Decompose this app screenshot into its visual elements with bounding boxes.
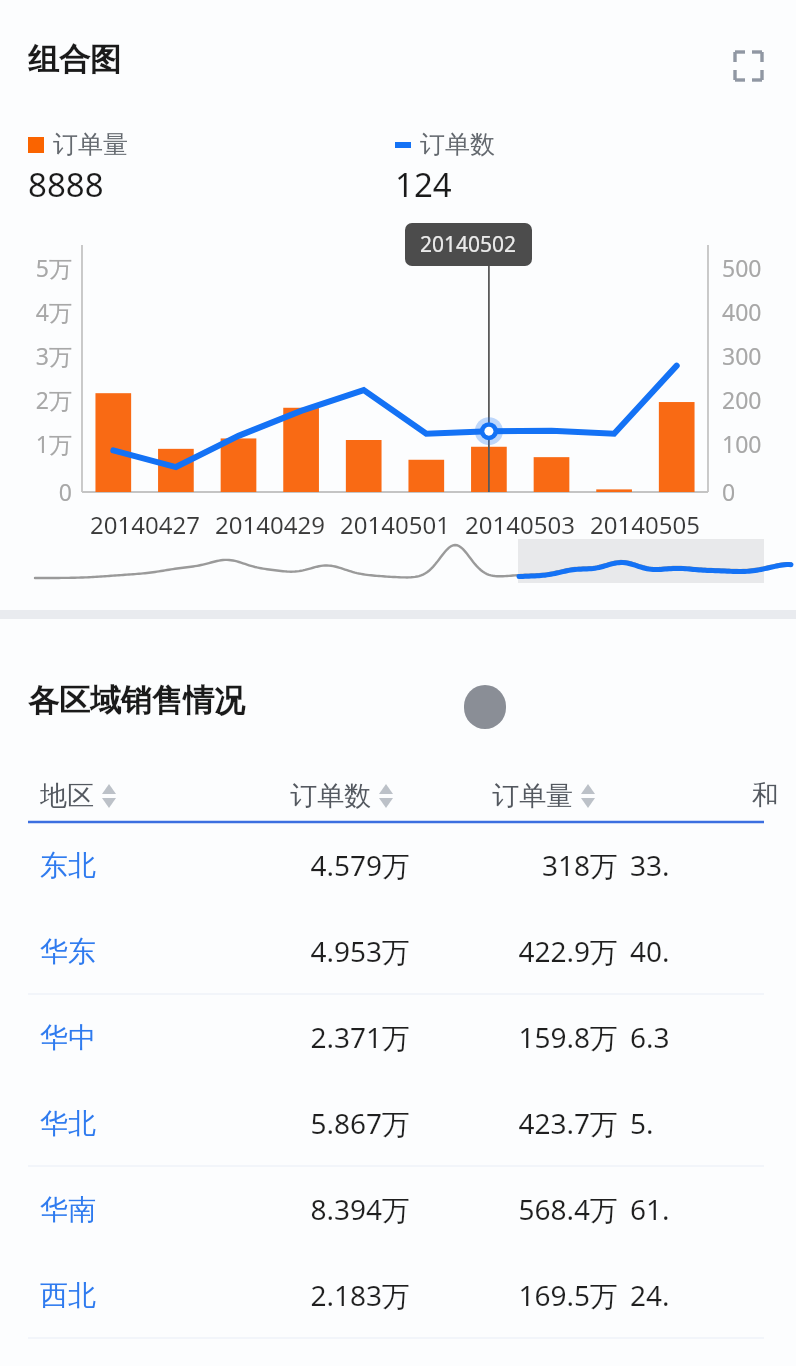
staticText: 20140429 bbox=[195, 508, 345, 541]
staticText: 4.579万 bbox=[120, 846, 410, 884]
staticText: 华北 bbox=[40, 1106, 96, 1141]
staticText: 169.5万 bbox=[410, 1276, 618, 1314]
button[interactable]: 华北 bbox=[0, 1080, 796, 1166]
staticText: 3万 bbox=[14, 340, 72, 371]
staticText: 61. bbox=[630, 1190, 670, 1228]
staticText: 8.394万 bbox=[120, 1190, 410, 1228]
staticText: 20140501 bbox=[320, 508, 470, 541]
staticText: 20140503 bbox=[445, 508, 595, 541]
staticText: 2.183万 bbox=[120, 1276, 410, 1314]
staticText: 500 bbox=[722, 252, 762, 283]
staticText: 200 bbox=[722, 384, 762, 415]
staticText: 0 bbox=[722, 476, 736, 507]
staticText: 400 bbox=[722, 296, 762, 327]
staticText: 8888 bbox=[28, 162, 104, 207]
staticText: 地区 bbox=[40, 779, 94, 813]
staticText: 568.4万 bbox=[410, 1190, 618, 1228]
button[interactable]: 华南 bbox=[0, 1166, 796, 1252]
staticText: 124 bbox=[395, 162, 452, 207]
staticText: 各区域销售情况 bbox=[28, 681, 245, 720]
staticText: 5.867万 bbox=[120, 1104, 410, 1142]
staticText: 订单数 bbox=[290, 779, 371, 813]
staticText: 159.8万 bbox=[410, 1018, 618, 1056]
staticText: 0 bbox=[14, 476, 72, 507]
staticText: 西北 bbox=[40, 1278, 96, 1313]
button[interactable]: Fullscreen bbox=[724, 41, 772, 89]
staticText: 423.7万 bbox=[410, 1104, 618, 1142]
staticText: 300 bbox=[722, 340, 762, 371]
button[interactable]: More options bbox=[464, 685, 506, 729]
staticText: 318万 bbox=[410, 846, 618, 884]
staticText: 2.371万 bbox=[120, 1018, 410, 1056]
button[interactable]: 订单数 bbox=[290, 774, 394, 818]
staticText: 24. bbox=[630, 1276, 670, 1314]
staticText: 订单数 bbox=[420, 129, 495, 160]
button[interactable]: 华东 bbox=[0, 908, 796, 994]
staticText: 订单量 bbox=[492, 779, 573, 813]
staticText: 5. bbox=[630, 1104, 654, 1142]
staticText: 东北 bbox=[40, 848, 96, 883]
staticText: 100 bbox=[722, 428, 762, 459]
button[interactable]: 订单量 bbox=[492, 774, 596, 818]
staticText: 组合图 bbox=[28, 40, 121, 79]
staticText: 和 bbox=[752, 778, 779, 812]
staticText: 5万 bbox=[14, 252, 72, 283]
staticText: 33. bbox=[630, 846, 670, 884]
staticText: 华中 bbox=[40, 1020, 96, 1055]
staticText: 华东 bbox=[40, 934, 96, 969]
staticText: 1万 bbox=[14, 428, 72, 459]
button[interactable]: 地区 bbox=[40, 774, 117, 818]
staticText: 20140505 bbox=[570, 508, 720, 541]
staticText: 422.9万 bbox=[410, 932, 618, 970]
staticText: 4.953万 bbox=[120, 932, 410, 970]
staticText: 20140502 bbox=[420, 230, 517, 259]
button[interactable]: 华中 bbox=[0, 994, 796, 1080]
button[interactable]: 东北 bbox=[0, 822, 796, 908]
button[interactable]: 西北 bbox=[0, 1252, 796, 1338]
staticText: 订单量 bbox=[53, 129, 128, 160]
staticText: 2万 bbox=[14, 384, 72, 415]
staticText: 20140427 bbox=[70, 508, 220, 541]
staticText: 4万 bbox=[14, 296, 72, 327]
staticText: 华南 bbox=[40, 1192, 96, 1227]
staticText: 40. bbox=[630, 932, 670, 970]
staticText: 6.3 bbox=[630, 1018, 670, 1056]
